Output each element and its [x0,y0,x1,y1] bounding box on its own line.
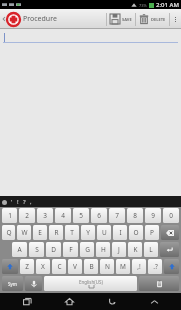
staticText: 0 [169,211,173,220]
button[interactable]: W [17,225,31,240]
staticText: ' [11,198,13,206]
button[interactable]: ,! [132,259,146,274]
button[interactable]: Home [56,293,82,310]
staticText: 4 [61,211,65,220]
staticText: W [21,228,28,237]
button[interactable]: K [128,242,142,257]
button[interactable]: 5 [73,208,89,223]
button[interactable]: 1 [2,208,17,223]
button[interactable] [3,32,178,43]
button[interactable]: DELETE [136,9,169,29]
staticText: S [35,245,39,254]
staticText: B [89,262,94,271]
staticText: D [51,245,56,254]
staticText: N [105,262,110,271]
staticText: G [85,245,90,254]
staticText: U [102,228,107,237]
staticText: T [70,228,74,237]
staticText: L [149,245,153,254]
staticText: 3 [43,211,47,220]
button[interactable]: Recent apps [14,293,40,310]
button[interactable]: 4 [55,208,71,223]
staticText: Q [6,228,12,237]
button[interactable]: 0 [163,208,179,223]
button[interactable]: D [46,242,61,257]
staticText: M [120,262,126,271]
button[interactable]: B [84,259,98,274]
button[interactable]: 9 [145,208,161,223]
button[interactable]: 8 [127,208,143,223]
button[interactable]: Back [99,293,125,310]
button[interactable]: Sym [2,276,23,291]
staticText: E [38,228,42,237]
staticText: Z [25,262,29,271]
button[interactable]: H [96,242,110,257]
button[interactable]: I [113,225,127,240]
button[interactable]: Z [20,259,34,274]
staticText: A [17,245,22,254]
staticText: H [101,245,106,254]
staticText: ! [17,198,19,206]
button[interactable]: X [36,259,50,274]
button[interactable]: V [68,259,82,274]
staticText: Procedure [23,14,57,24]
staticText: 6 [97,211,101,220]
button[interactable]: Y [81,225,95,240]
button[interactable]: Voice input [25,276,42,291]
staticText: R [54,228,59,237]
button[interactable]: 3 [37,208,53,223]
staticText: SAVE [122,17,132,22]
button[interactable]: 6 [91,208,107,223]
staticText: 9 [151,211,155,220]
button[interactable]: English(US) [44,276,137,291]
button[interactable]: M [116,259,130,274]
staticText: 1 [8,211,12,220]
button[interactable]: Q [2,225,15,240]
button[interactable]: Clipboard [139,276,179,291]
staticText: J [118,245,120,254]
staticText: ,! [137,262,141,271]
button[interactable]: SAVE [107,9,135,29]
button[interactable]: P [145,225,159,240]
button[interactable]: T [65,225,79,240]
button[interactable]: O [129,225,143,240]
staticText: K [133,245,138,254]
staticText: 5 [79,211,83,220]
button[interactable]: Shift [2,259,18,274]
button[interactable]: 7 [109,208,125,223]
button[interactable]: N [100,259,114,274]
button[interactable]: S [29,242,44,257]
staticText: C [57,262,62,271]
button[interactable]: More options [170,9,181,29]
staticText: X [41,262,45,271]
button[interactable]: F [63,242,78,257]
button[interactable]: L [144,242,158,257]
staticText: 8 [133,211,137,220]
button[interactable]: A [12,242,27,257]
button[interactable]: Hide keyboard [141,293,167,310]
button[interactable]: G [80,242,94,257]
staticText: ? [23,198,26,206]
staticText: F [69,245,73,254]
button[interactable]: .? [148,259,162,274]
button[interactable]: Procedure [0,9,61,29]
button[interactable]: 2 [19,208,35,223]
button[interactable]: R [49,225,63,240]
staticText: Y [86,228,90,237]
button[interactable]: Backspace [161,225,179,240]
button[interactable]: E [33,225,47,240]
staticText: O [133,228,139,237]
button[interactable]: C [52,259,66,274]
button[interactable]: Shift [164,259,179,274]
staticText: English(US) [79,279,103,285]
staticText: P [150,228,154,237]
button[interactable]: Enter [160,242,179,257]
staticText: .? [153,262,158,271]
staticText: 73% [139,3,147,8]
button[interactable]: J [112,242,126,257]
staticText: 2:01 AM [156,1,179,9]
staticText: 2 [25,211,29,220]
button[interactable]: U [97,225,111,240]
staticText: 7 [115,211,119,220]
staticText: V [73,262,77,271]
